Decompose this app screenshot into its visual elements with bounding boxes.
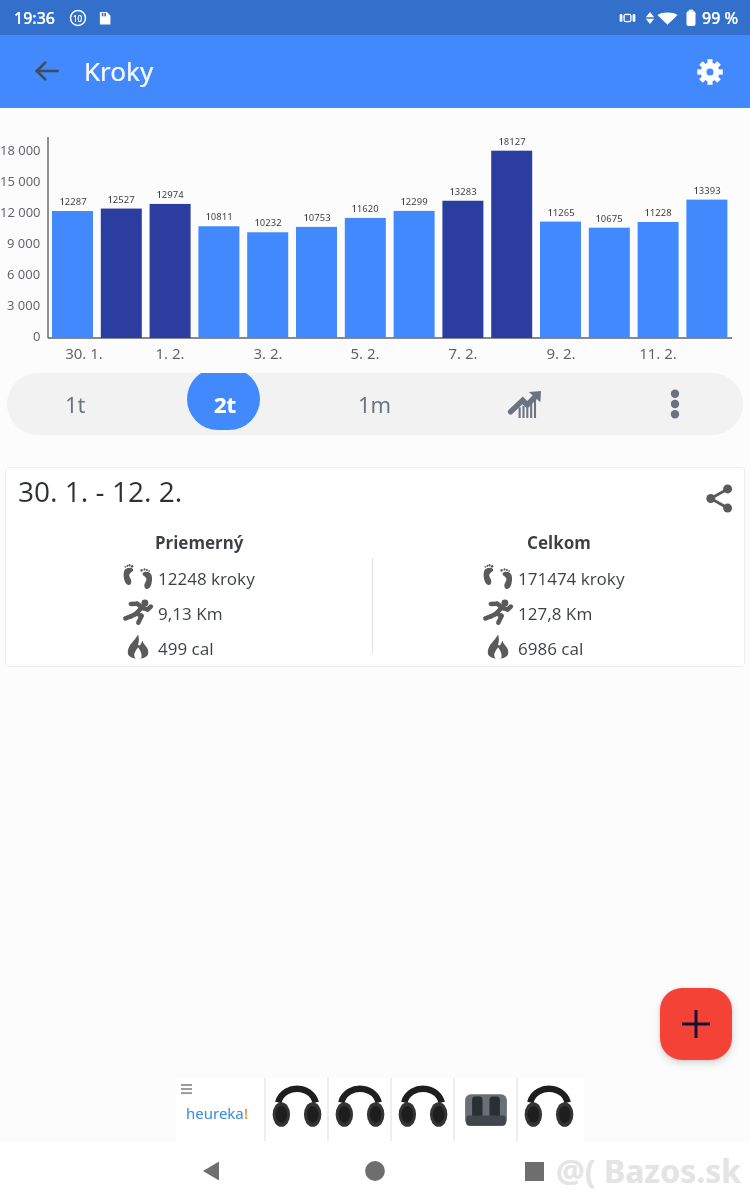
button[interactable]: Settings — [685, 47, 735, 97]
staticText: 30. 1. - 12. 2. — [18, 472, 183, 510]
staticText: 11620 — [351, 202, 379, 215]
staticText: 12248 kroky — [158, 567, 255, 590]
staticText: 12299 — [400, 195, 428, 208]
staticText: 171474 kroky — [518, 567, 625, 590]
staticText: 0 — [33, 327, 41, 345]
staticText: 1. 2. — [155, 343, 185, 363]
staticText: 1m — [358, 389, 392, 419]
button[interactable]: 2t — [150, 373, 300, 435]
staticText: 6 000 — [7, 265, 41, 283]
staticText: 12287 — [59, 195, 87, 208]
staticText: 10675 — [595, 212, 623, 225]
staticText: heureka — [186, 1103, 244, 1123]
button[interactable]: Home — [352, 1148, 398, 1194]
button[interactable]: Recents — [511, 1148, 557, 1194]
staticText: 30. 1. — [65, 343, 103, 363]
staticText: 10753 — [303, 211, 331, 224]
staticText: 9,13 Km — [158, 602, 223, 625]
staticText: Kroky — [84, 53, 154, 88]
staticText: 10 — [73, 13, 83, 24]
staticText: 10232 — [254, 216, 282, 229]
button[interactable]: More options — [600, 373, 750, 435]
button[interactable]: Trends — [450, 373, 600, 435]
staticText: 12527 — [107, 193, 135, 206]
staticText: 499 cal — [158, 637, 214, 660]
button[interactable]: Share — [696, 475, 742, 521]
button[interactable]: Advertisement — [176, 1078, 584, 1141]
staticText: 99 % — [702, 7, 739, 29]
staticText: 3 000 — [7, 296, 41, 314]
button[interactable]: 1t — [0, 373, 150, 435]
button[interactable]: 30. 1. - 12. 2. — [5, 467, 745, 667]
staticText: 18127 — [498, 135, 526, 148]
staticText: 9. 2. — [546, 343, 576, 363]
staticText: 15 000 — [0, 172, 41, 190]
button[interactable]: Back — [22, 46, 72, 96]
staticText: 11265 — [547, 206, 575, 219]
staticText: 13283 — [449, 185, 477, 198]
staticText: 10811 — [205, 210, 233, 223]
staticText: Celkom — [527, 531, 591, 554]
staticText: ! — [244, 1103, 249, 1123]
staticText: Priemerný — [155, 531, 244, 554]
staticText: 13393 — [693, 184, 721, 197]
staticText: 1t — [65, 389, 86, 419]
staticText: 2t — [214, 389, 237, 419]
button[interactable]: 1m — [300, 373, 450, 435]
staticText: 6986 cal — [518, 637, 584, 660]
staticText: 12974 — [156, 188, 184, 201]
staticText: 7. 2. — [448, 343, 478, 363]
staticText: 12 000 — [0, 203, 41, 221]
staticText: 5. 2. — [350, 343, 380, 363]
staticText: 11228 — [644, 206, 672, 219]
staticText: 19:36 — [14, 7, 55, 29]
button[interactable]: Back — [188, 1148, 234, 1194]
staticText: 9 000 — [7, 234, 41, 252]
button[interactable]: Add — [660, 988, 732, 1060]
staticText: @( Bazos.sk — [556, 1149, 742, 1193]
staticText: 11. 2. — [639, 343, 677, 363]
staticText: 3. 2. — [253, 343, 283, 363]
staticText: 127,8 Km — [518, 602, 593, 625]
staticText: 18 000 — [0, 141, 41, 159]
